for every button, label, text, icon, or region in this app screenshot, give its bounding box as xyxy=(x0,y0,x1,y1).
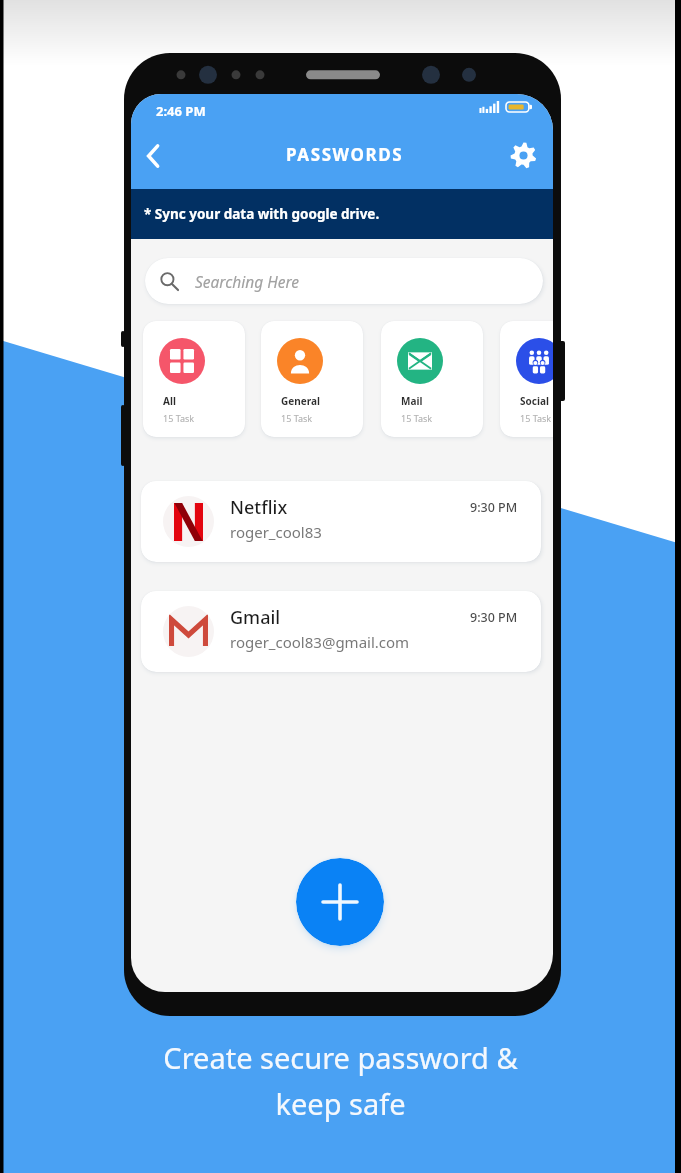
button[interactable]: Add password xyxy=(296,858,384,946)
button[interactable]: All xyxy=(143,321,245,437)
staticText: General xyxy=(281,394,320,408)
staticText: 15 Task xyxy=(281,412,313,424)
staticText: Social xyxy=(520,394,549,408)
staticText: Mail xyxy=(401,394,423,408)
button[interactable]: General xyxy=(261,321,363,437)
button[interactable]: Back xyxy=(131,134,175,178)
button[interactable]: Settings xyxy=(502,134,544,176)
button[interactable]: Social xyxy=(500,321,553,437)
staticText: roger_cool83 xyxy=(230,522,322,542)
staticText: 9:30 PM xyxy=(470,499,518,516)
staticText: 15 Task xyxy=(520,412,552,424)
staticText: PASSWORDS xyxy=(286,143,404,166)
staticText: 9:30 PM xyxy=(470,609,518,626)
staticText: * Sync your data with google drive. xyxy=(144,205,380,223)
staticText: 15 Task xyxy=(163,412,195,424)
staticText: 15 Task xyxy=(401,412,433,424)
button[interactable]: Netflix xyxy=(141,481,541,562)
staticText: keep safe xyxy=(275,1084,406,1123)
button[interactable]: Searching Here xyxy=(145,258,543,304)
staticText: Searching Here xyxy=(195,271,300,292)
staticText: Gmail xyxy=(230,605,281,630)
staticText: Netflix xyxy=(230,495,288,520)
button[interactable]: Mail xyxy=(381,321,483,437)
staticText: roger_cool83@gmail.com xyxy=(230,632,410,652)
staticText: 2:46 PM xyxy=(156,102,206,120)
button[interactable]: Gmail xyxy=(141,591,541,672)
staticText: All xyxy=(163,394,176,408)
staticText: Create secure password & xyxy=(163,1038,518,1077)
